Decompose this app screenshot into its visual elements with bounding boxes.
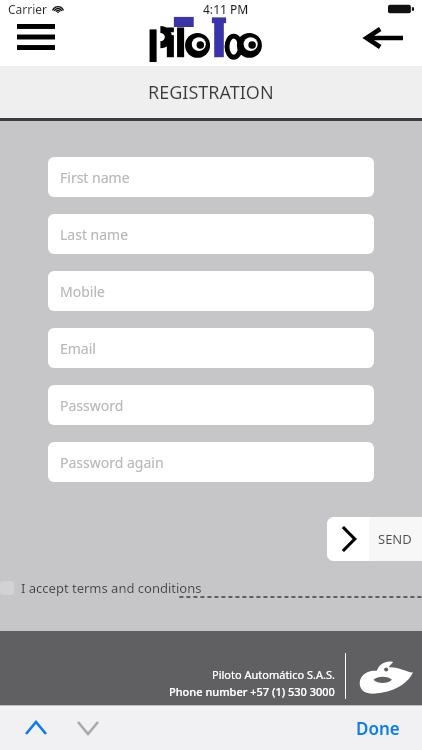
staticText: Email — [60, 339, 96, 358]
staticText: Password — [60, 396, 124, 415]
staticText: Password again — [60, 453, 164, 472]
staticText: Done — [356, 717, 400, 740]
staticText: 4:11 PM — [203, 1, 249, 17]
staticText: SEND — [378, 530, 412, 548]
staticText: First name — [60, 168, 130, 187]
staticText: REGISTRATION — [148, 80, 274, 105]
staticText: Mobile — [60, 282, 105, 301]
staticText: Piloto Automático S.A.S. — [212, 667, 335, 682]
button[interactable]: I accept terms and conditions — [0, 579, 422, 597]
staticText: Last name — [60, 225, 129, 244]
button[interactable]: Menu — [10, 11, 62, 63]
button[interactable]: First name — [48, 157, 374, 197]
staticText: Carrier — [8, 1, 48, 17]
button[interactable]: Previous field — [16, 708, 56, 748]
button[interactable]: Last name — [48, 214, 374, 254]
button[interactable]: Done — [350, 713, 406, 744]
button[interactable]: Next field — [68, 708, 108, 748]
button[interactable]: Back — [358, 12, 410, 64]
button[interactable]: Mobile — [48, 271, 374, 311]
button[interactable]: Password again — [48, 442, 374, 482]
staticText: I accept terms and conditions — [21, 579, 202, 597]
button[interactable]: SEND — [327, 517, 422, 561]
button[interactable]: Password — [48, 385, 374, 425]
staticText: Phone number +57 (1) 530 3000 — [169, 684, 335, 699]
button[interactable]: Email — [48, 328, 374, 368]
